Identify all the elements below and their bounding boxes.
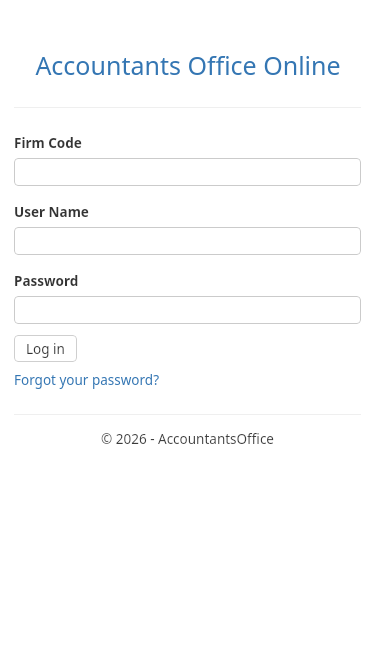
staticText: © 2026 - AccountantsOffice [101, 430, 274, 448]
staticText: Firm Code [14, 134, 82, 152]
staticText: Accountants Office Online [35, 48, 341, 82]
button[interactable]: Log in [14, 335, 77, 362]
staticText: Log in [26, 340, 65, 358]
button[interactable]: User Name [14, 227, 361, 255]
button[interactable]: Firm Code [14, 158, 361, 186]
staticText: Password [14, 272, 79, 290]
staticText: User Name [14, 203, 89, 221]
button[interactable]: Password [14, 296, 361, 324]
button[interactable]: Forgot your password? [14, 371, 160, 389]
staticText: Forgot your password? [14, 371, 160, 389]
